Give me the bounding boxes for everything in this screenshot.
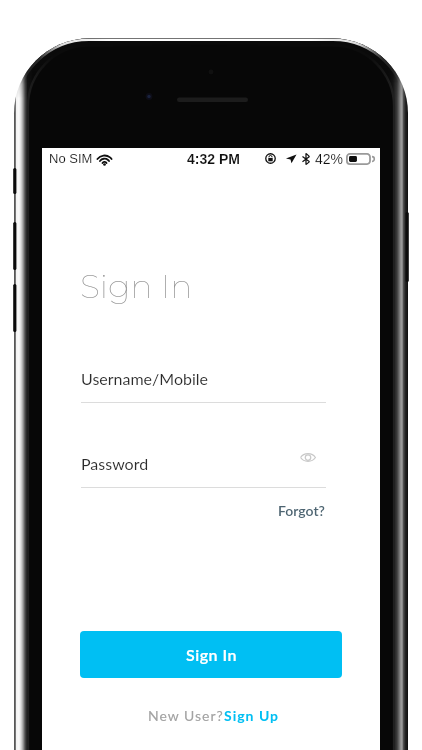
staticText: 42% (315, 151, 344, 167)
staticText: Username/Mobile (81, 369, 209, 388)
staticText: Sign In (186, 645, 237, 664)
staticText: New User? (148, 707, 224, 724)
staticText: Forgot? (278, 502, 325, 519)
staticText: 4:32 PM (187, 151, 240, 167)
button[interactable]: Username/Mobile (81, 366, 326, 406)
staticText: Sign Up (224, 707, 280, 724)
button[interactable]: Sign In (80, 631, 342, 678)
staticText: Password (81, 454, 149, 473)
staticText: Sign In (80, 266, 193, 306)
button[interactable]: Sign Up (224, 707, 280, 724)
button[interactable]: Forgot? (275, 500, 328, 521)
button[interactable]: Show password (296, 445, 320, 469)
staticText: No SIM (49, 151, 93, 166)
button[interactable]: Password (81, 450, 326, 476)
